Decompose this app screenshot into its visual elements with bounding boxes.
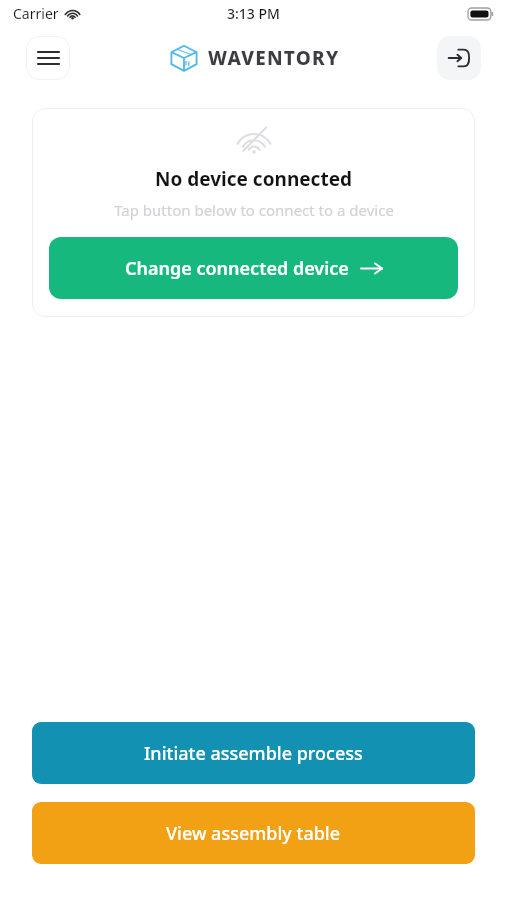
button[interactable]: View assembly table	[32, 802, 475, 864]
button[interactable]: Change connected device	[49, 237, 458, 299]
button[interactable]: Log out	[437, 36, 481, 80]
staticText: 3:13 PM	[227, 4, 280, 23]
staticText: Initiate assemble process	[144, 741, 363, 766]
staticText: No device connected	[155, 166, 352, 192]
staticText: Tap button below to connect to a device	[114, 200, 394, 220]
button[interactable]: Menu	[26, 36, 70, 80]
staticText: Carrier	[13, 4, 59, 23]
button[interactable]: Initiate assemble process	[32, 722, 475, 784]
staticText: View assembly table	[166, 821, 341, 846]
staticText: Change connected device	[125, 256, 349, 281]
staticText: WAVENTORY	[208, 45, 340, 71]
